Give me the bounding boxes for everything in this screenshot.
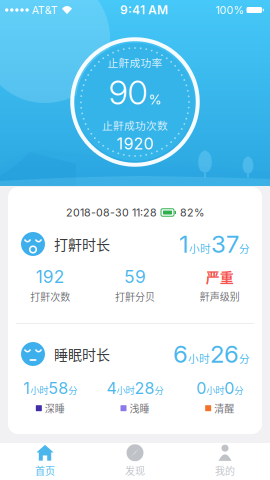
staticText: 严重 bbox=[206, 267, 234, 287]
staticText: 28 bbox=[134, 379, 154, 398]
staticText: 小时 bbox=[188, 350, 210, 366]
staticText: 6 bbox=[173, 339, 188, 368]
staticText: 2018-08-30 11:28 bbox=[66, 206, 157, 219]
staticText: 发现 bbox=[125, 463, 145, 478]
staticText: 9:41 AM bbox=[120, 3, 168, 17]
staticText: 1920 bbox=[116, 134, 153, 153]
staticText: 100% bbox=[215, 3, 243, 16]
staticText: 打鼾次数 bbox=[30, 289, 70, 304]
staticText: 深睡 bbox=[45, 401, 65, 415]
staticText: AT&T bbox=[32, 3, 58, 16]
staticText: 止鼾成功率 bbox=[107, 55, 162, 70]
staticText: 0 bbox=[196, 379, 206, 398]
staticText: 分 bbox=[239, 240, 250, 256]
staticText: 分 bbox=[68, 383, 77, 397]
staticText: 鼾声级别 bbox=[200, 289, 240, 303]
staticText: 0 bbox=[224, 379, 234, 398]
staticText: 1 bbox=[179, 229, 189, 258]
staticText: 58 bbox=[48, 379, 68, 398]
staticText: 37 bbox=[211, 229, 239, 258]
staticText: 小时 bbox=[206, 383, 224, 397]
staticText: 止鼾成功次数 bbox=[102, 117, 168, 133]
staticText: 清醒 bbox=[214, 401, 234, 415]
staticText: 小时 bbox=[30, 383, 48, 397]
staticText: 4 bbox=[106, 379, 116, 398]
staticText: 82% bbox=[180, 206, 204, 219]
staticText: 59 bbox=[124, 266, 146, 287]
staticText: 26 bbox=[210, 339, 239, 368]
staticText: 小时 bbox=[116, 383, 134, 397]
button[interactable]: 我的 bbox=[180, 439, 270, 480]
staticText: 打鼾分贝 bbox=[115, 289, 155, 304]
staticText: 分 bbox=[234, 383, 243, 397]
staticText: 小时 bbox=[189, 240, 211, 256]
staticText: 90 bbox=[108, 72, 147, 112]
staticText: 1 bbox=[23, 379, 30, 398]
staticText: % bbox=[148, 91, 161, 108]
staticText: 分 bbox=[154, 383, 163, 397]
staticText: 睡眠时长 bbox=[54, 344, 110, 364]
staticText: 我的 bbox=[215, 463, 235, 478]
staticText: 192 bbox=[36, 266, 65, 287]
staticText: 浅睡 bbox=[129, 401, 149, 415]
button[interactable]: 发现 bbox=[90, 439, 180, 480]
staticText: 首页 bbox=[35, 463, 55, 478]
staticText: 打鼾时长 bbox=[54, 234, 110, 254]
button[interactable]: 首页 bbox=[0, 439, 90, 480]
staticText: 分 bbox=[239, 350, 250, 366]
